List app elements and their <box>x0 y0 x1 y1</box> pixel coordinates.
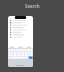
staticText: Search <box>25 3 40 9</box>
button[interactable]: Search screen preview <box>8 16 33 67</box>
